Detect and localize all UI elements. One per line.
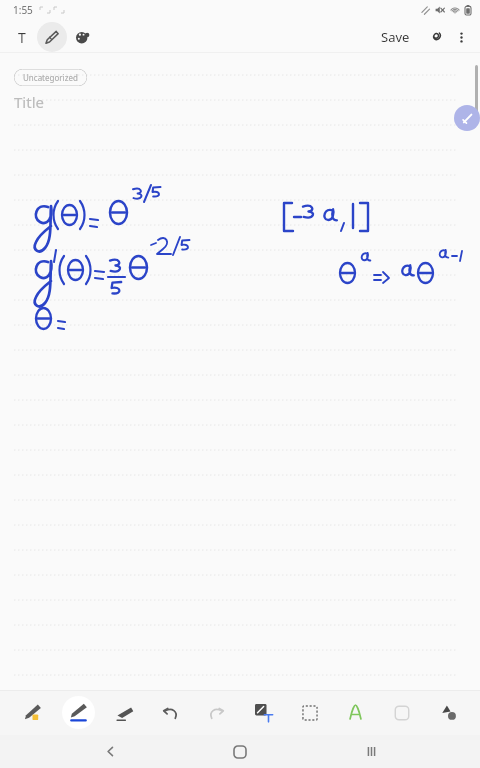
button[interactable]: Select [293,696,326,729]
staticText: Uncategorized [23,72,78,83]
button[interactable]: Text mode [7,22,37,52]
button[interactable]: Eraser [108,696,141,729]
staticText: Save [381,28,410,46]
button[interactable]: More tools [431,696,464,729]
button[interactable]: Home [219,735,261,768]
staticText: Title [14,92,44,112]
button[interactable]: Redo [200,696,233,729]
button[interactable]: Quick pen [454,105,480,131]
button[interactable]: Color palette [67,22,97,52]
button[interactable]: Handwriting mode [37,22,67,52]
button[interactable]: Save [375,23,416,51]
staticText: T [18,28,26,47]
button[interactable]: Pen [62,696,95,729]
button[interactable]: Back [89,735,131,768]
button[interactable]: Attach file [423,24,449,50]
button[interactable]: More options [449,25,473,49]
button[interactable]: Recent apps [350,735,392,768]
staticText: 1:55 [13,3,33,17]
button[interactable]: Convert to text [247,696,280,729]
button[interactable]: Canvas mode [385,696,418,729]
button[interactable]: Highlighter [16,696,49,729]
button[interactable]: Uncategorized [14,69,87,86]
button[interactable]: Auto shape [339,696,372,729]
button[interactable]: Undo [154,696,187,729]
